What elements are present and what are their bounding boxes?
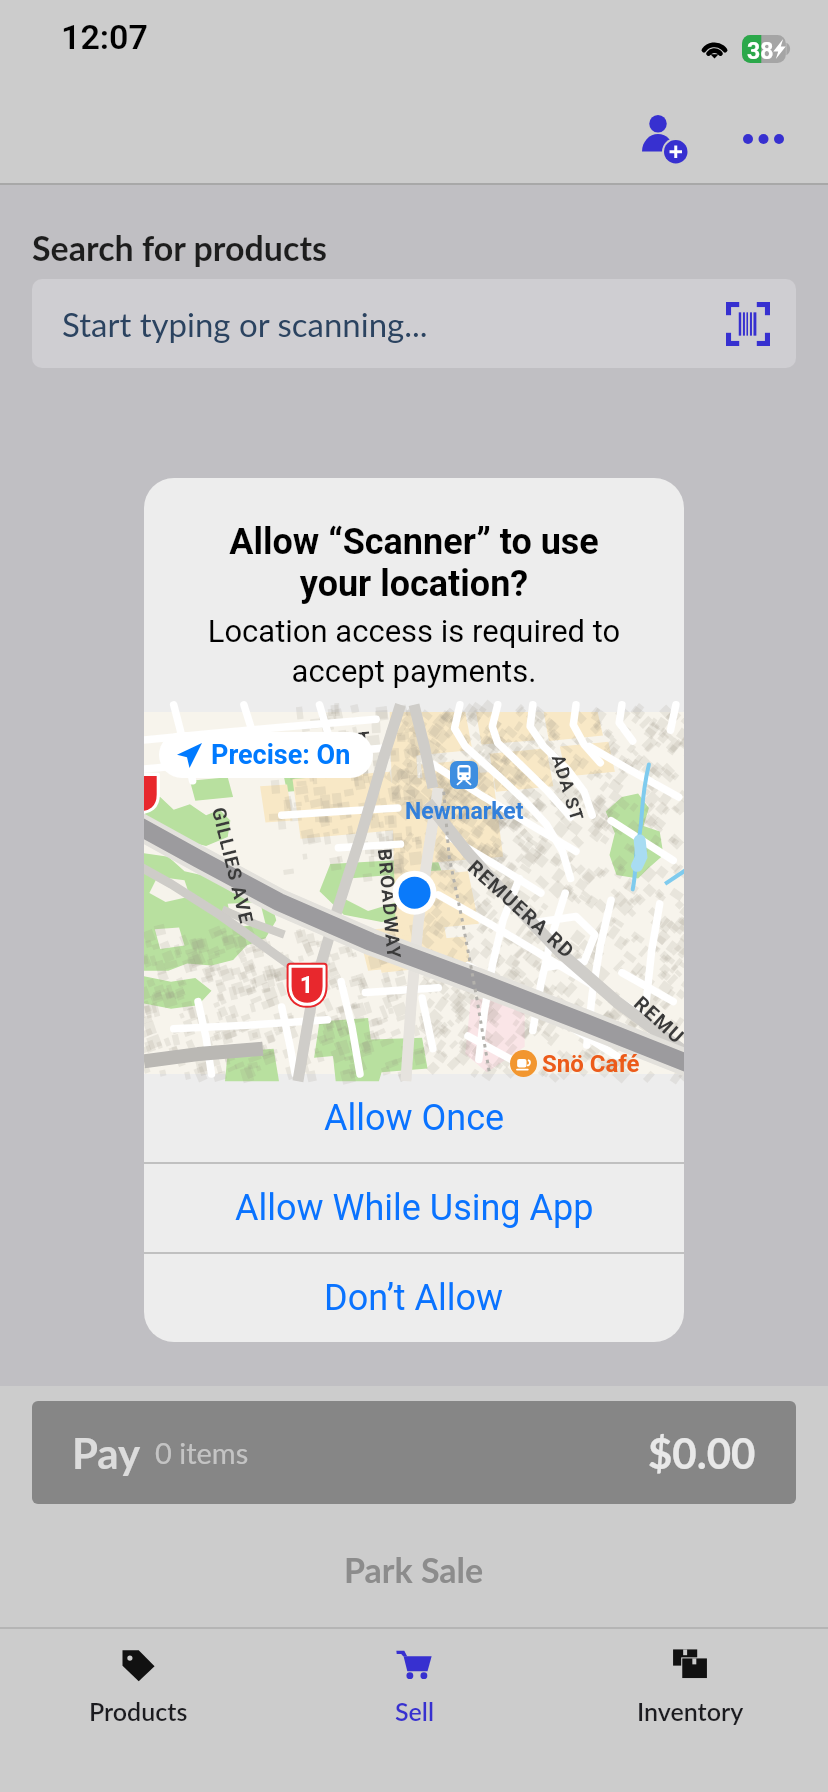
button[interactable]: Sell: [276, 1629, 552, 1792]
button[interactable]: Start typing or scanning...: [32, 279, 796, 368]
staticText: Allow “Scanner” to use your location?: [158, 521, 670, 605]
staticText: 0 items: [155, 1435, 249, 1470]
button[interactable]: Allow While Using App: [144, 1164, 684, 1252]
button[interactable]: More options: [717, 93, 809, 185]
button[interactable]: Add customer: [617, 93, 709, 185]
staticText: Park Sale: [344, 1549, 484, 1590]
staticText: Allow Once: [324, 1097, 505, 1139]
staticText: Snö Café: [542, 1050, 640, 1078]
staticText: Don’t Allow: [324, 1277, 504, 1319]
button[interactable]: Pay: [32, 1401, 796, 1504]
staticText: Products: [89, 1696, 188, 1726]
staticText: Newmarket: [405, 798, 524, 825]
staticText: Precise: On: [211, 739, 351, 771]
staticText: 38: [747, 38, 774, 65]
staticText: Sell: [395, 1696, 434, 1726]
button[interactable]: Don’t Allow: [144, 1254, 684, 1342]
staticText: Location access is required to accept pa…: [158, 613, 670, 689]
button[interactable]: Allow Once: [144, 1074, 684, 1162]
staticText: $0.00: [648, 1428, 756, 1478]
staticText: Allow While Using App: [235, 1187, 594, 1229]
button[interactable]: Products: [0, 1629, 276, 1792]
staticText: Search for products: [32, 227, 328, 268]
button[interactable]: Precise: On: [159, 732, 373, 778]
staticText: Start typing or scanning...: [62, 304, 428, 344]
staticText: Inventory: [637, 1696, 744, 1726]
staticText: 12:07: [61, 17, 148, 57]
staticText: Pay: [72, 1428, 141, 1478]
button[interactable]: Park Sale: [0, 1504, 828, 1635]
button[interactable]: Inventory: [552, 1629, 828, 1792]
